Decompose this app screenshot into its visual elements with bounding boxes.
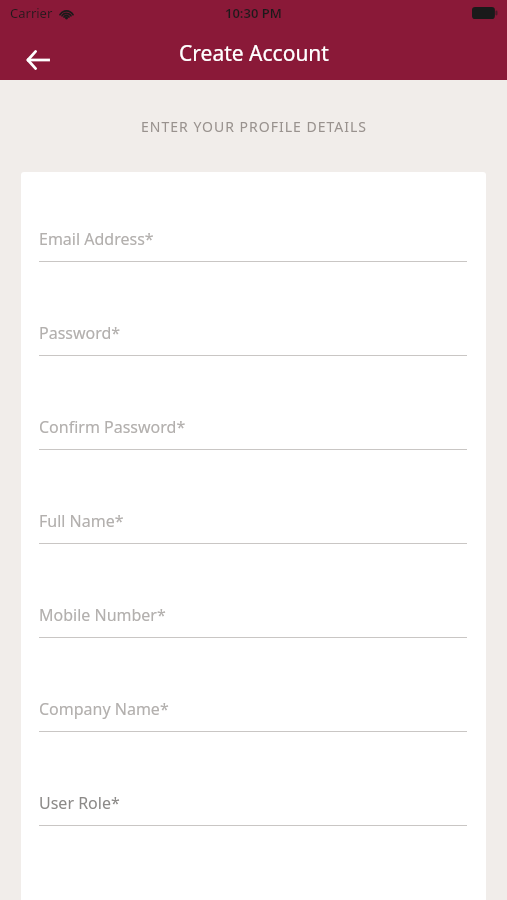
staticText: 10:30 PM xyxy=(225,4,282,22)
staticText: Full Name* xyxy=(39,510,124,532)
staticText: Password* xyxy=(39,322,121,344)
button[interactable]: Company Name* xyxy=(21,698,486,732)
staticText: ENTER YOUR PROFILE DETAILS xyxy=(141,117,367,136)
button[interactable]: Full Name* xyxy=(21,510,486,544)
staticText: Mobile Number* xyxy=(39,604,166,626)
staticText: Create Account xyxy=(179,39,329,68)
button[interactable]: Email Address* xyxy=(21,228,486,262)
button[interactable]: Back xyxy=(14,36,62,84)
staticText: Email Address* xyxy=(39,228,154,250)
staticText: User Role* xyxy=(39,792,120,814)
staticText: Confirm Password* xyxy=(39,416,186,438)
button[interactable]: Password* xyxy=(21,322,486,356)
button[interactable]: User Role* xyxy=(21,792,486,826)
staticText: Carrier xyxy=(10,4,53,22)
staticText: Company Name* xyxy=(39,698,169,720)
button[interactable]: Confirm Password* xyxy=(21,416,486,450)
button[interactable]: Mobile Number* xyxy=(21,604,486,638)
